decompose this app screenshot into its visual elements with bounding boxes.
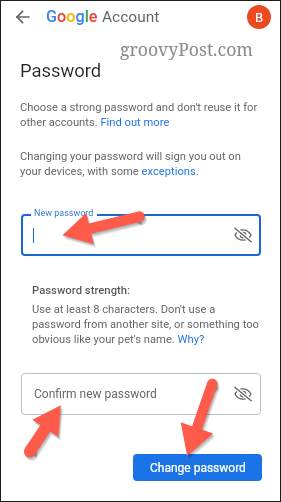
button[interactable]: Show confirm password <box>233 384 253 404</box>
button[interactable]: Show new password <box>233 225 253 245</box>
staticText: New password <box>34 208 94 219</box>
staticText: Confirm new password <box>34 387 157 401</box>
button[interactable] <box>21 373 261 415</box>
staticText: Google <box>46 7 98 26</box>
staticText: Use at least 8 characters. Don't use a p… <box>32 303 264 345</box>
staticText: Changing your password will sign you out… <box>20 150 263 177</box>
button[interactable]: Back <box>12 6 34 28</box>
button[interactable] <box>21 214 261 256</box>
button[interactable]: Change password <box>133 454 262 481</box>
button[interactable]: Account profile <box>247 5 271 29</box>
staticText: groovyPost.com <box>120 37 253 61</box>
staticText: B <box>255 10 264 25</box>
staticText: Account <box>102 8 160 26</box>
staticText: Password <box>20 60 102 82</box>
staticText: Password strength: <box>32 284 131 297</box>
staticText: Change password <box>150 461 246 475</box>
staticText: Choose a strong password and don't reuse… <box>20 101 263 128</box>
